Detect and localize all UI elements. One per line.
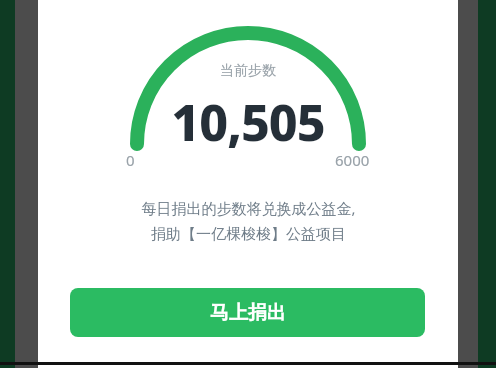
staticText: 捐助【一亿棵梭梭】公益项目 bbox=[151, 225, 346, 244]
staticText: 0 bbox=[126, 150, 135, 170]
staticText: 每日捐出的步数将兑换成公益金, bbox=[141, 198, 356, 218]
staticText: 马上捐出 bbox=[210, 301, 286, 325]
staticText: 6000 bbox=[335, 150, 370, 170]
button[interactable]: 马上捐出 bbox=[70, 288, 425, 337]
staticText: 当前步数 bbox=[220, 62, 276, 80]
staticText: 10,505 bbox=[171, 88, 325, 156]
